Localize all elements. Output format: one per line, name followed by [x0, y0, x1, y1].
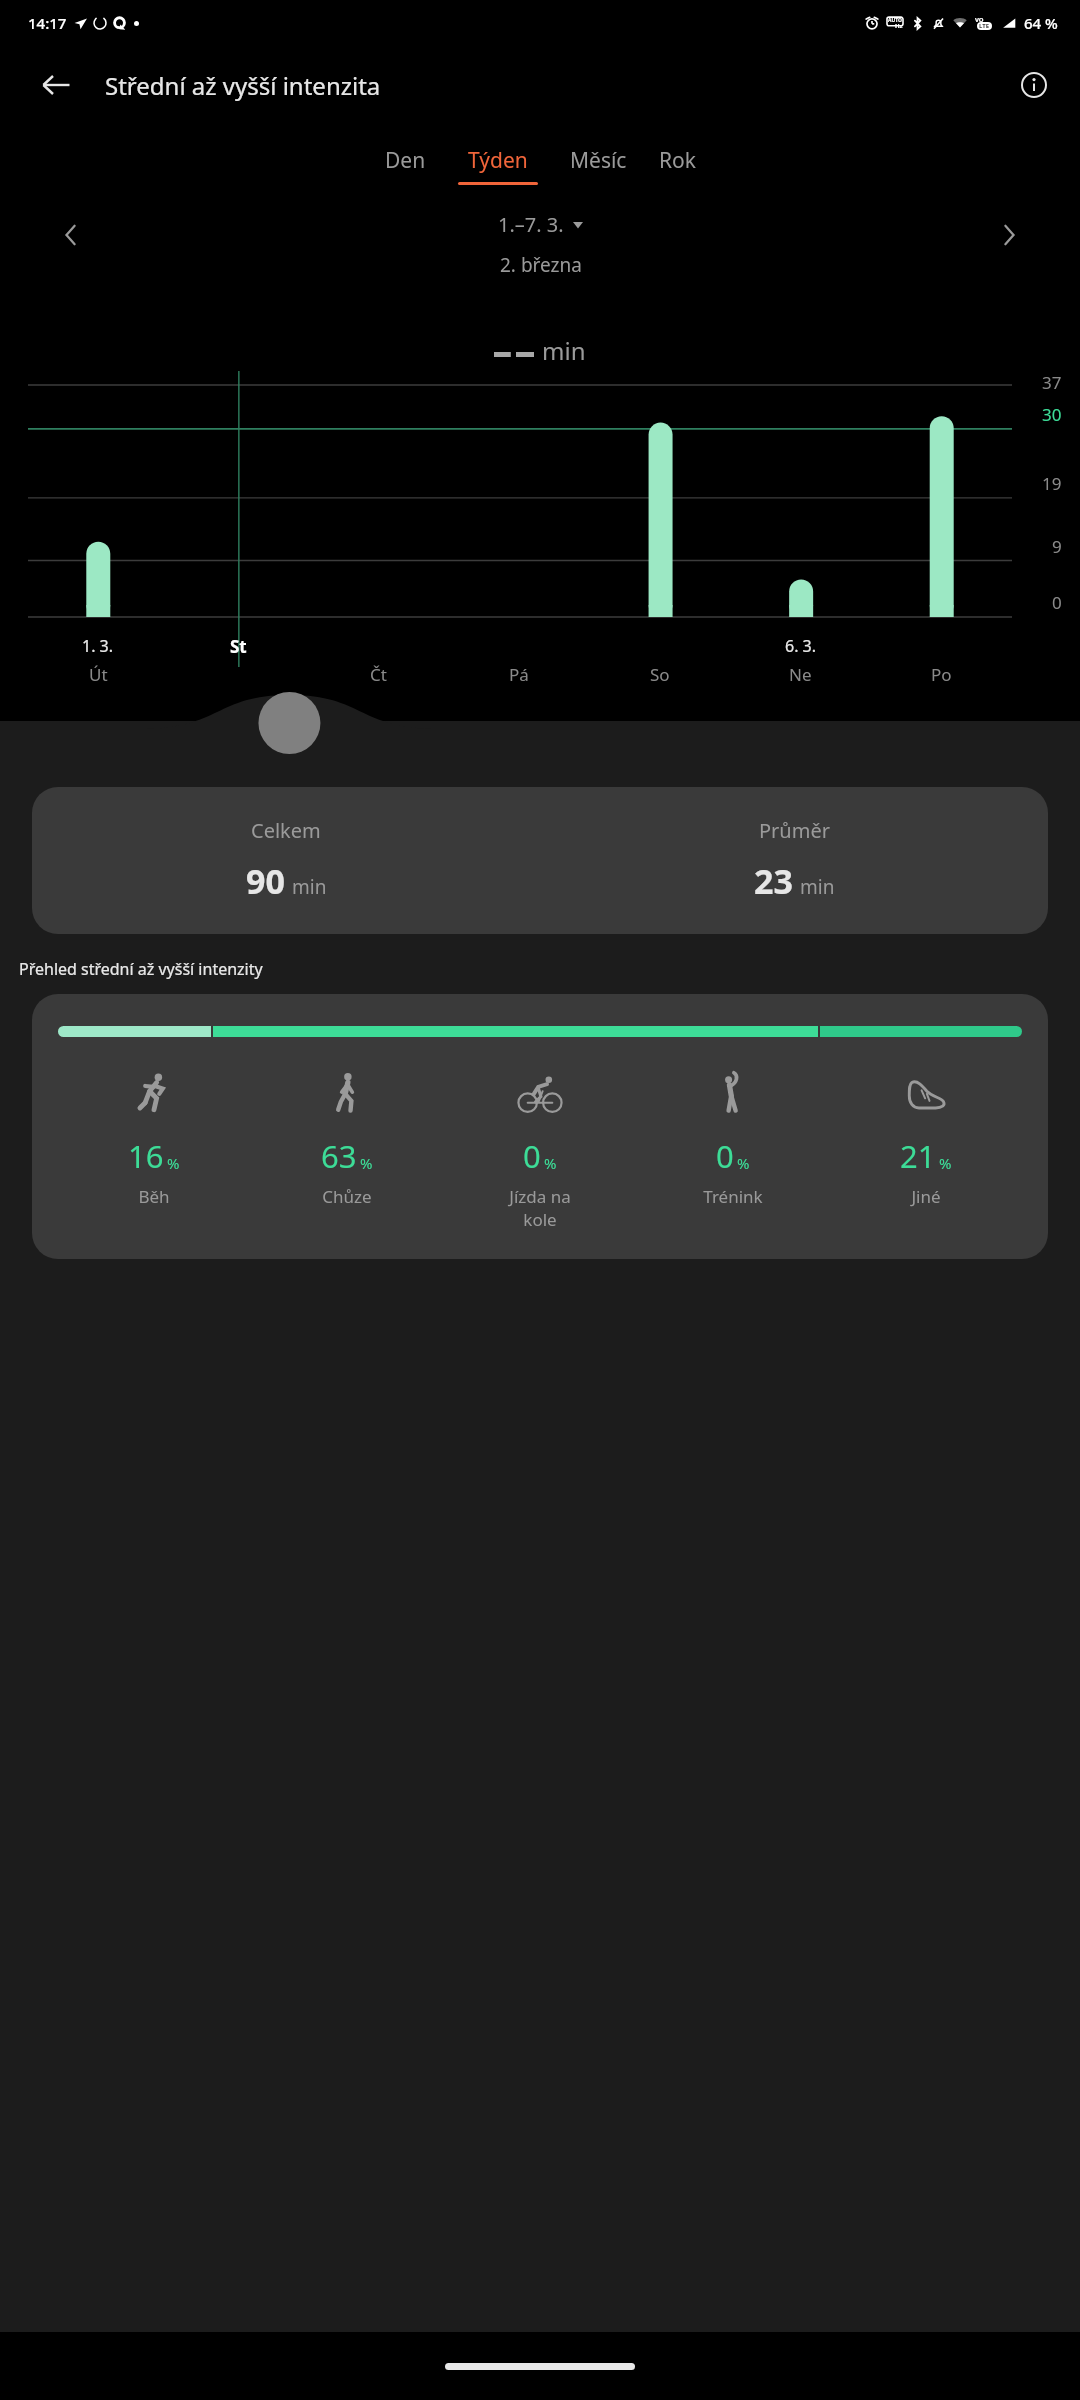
button[interactable]: Previous week [50, 213, 94, 257]
staticText: 23 [754, 858, 793, 904]
staticText: 16 [128, 1135, 164, 1177]
button[interactable]: Měsíc [554, 146, 643, 185]
staticText: LTE [979, 22, 990, 30]
staticText: 9 [1052, 535, 1062, 558]
staticText: min [292, 874, 327, 900]
staticText: 0 [716, 1135, 734, 1177]
staticText: Běh [138, 1185, 170, 1208]
staticText: Den [385, 146, 426, 175]
staticText: 1.–7. 3. [498, 211, 564, 238]
staticText: 0 [523, 1135, 541, 1177]
staticText: % [167, 1153, 180, 1173]
staticText: % [360, 1153, 373, 1173]
staticText: 19 [1042, 472, 1062, 495]
staticText: 21 [900, 1135, 936, 1177]
staticText: Jiné [911, 1185, 941, 1208]
staticText: Měsíc [570, 146, 627, 175]
button[interactable]: 1.–7. 3. [490, 205, 591, 244]
staticText: min [542, 334, 586, 367]
staticText: min [800, 874, 835, 900]
staticText: 90 [246, 858, 285, 904]
staticText: Čt [370, 663, 387, 686]
staticText: Rok [659, 146, 696, 175]
staticText: 30 [1042, 403, 1062, 426]
staticText: 2. března [500, 252, 582, 278]
staticText: Hz [895, 22, 903, 30]
staticText: 64 % [1024, 13, 1058, 33]
staticText: Ne [789, 663, 812, 686]
button[interactable]: Information [1016, 67, 1052, 103]
staticText: St [230, 635, 247, 658]
button[interactable]: Rok [643, 146, 712, 185]
staticText: % [737, 1153, 750, 1173]
staticText: VO [975, 16, 984, 24]
staticText: 37 [1042, 371, 1062, 394]
staticText: Chůze [322, 1185, 372, 1208]
staticText: Střední až vyšší intenzita [105, 69, 381, 102]
button[interactable]: 16 [32, 994, 1048, 1259]
staticText: % [544, 1153, 557, 1173]
staticText: 14:17 [28, 13, 67, 33]
staticText: AUTO [888, 17, 902, 24]
staticText: 6. 3. [785, 635, 817, 657]
staticText: Průměr [759, 817, 830, 844]
staticText: 0 [1052, 591, 1062, 614]
staticText: Týden [468, 146, 528, 175]
staticText: 1. 3. [82, 635, 114, 657]
staticText: Jízda na kole [509, 1185, 571, 1231]
staticText: Út [89, 663, 108, 686]
staticText: Přehled střední až vyšší intenzity [19, 958, 263, 980]
button[interactable]: Next week [986, 213, 1030, 257]
button[interactable]: Týden [442, 146, 554, 185]
button[interactable]: Back [38, 67, 74, 103]
staticText: % [939, 1153, 952, 1173]
staticText: Pá [509, 663, 529, 686]
staticText: Celkem [251, 817, 321, 844]
staticText: 63 [321, 1135, 357, 1177]
staticText: Trénink [703, 1185, 763, 1208]
staticText: So [650, 663, 670, 686]
staticText: Po [931, 663, 952, 686]
button[interactable]: Celkem [32, 787, 1048, 934]
button[interactable]: Den [369, 146, 442, 185]
